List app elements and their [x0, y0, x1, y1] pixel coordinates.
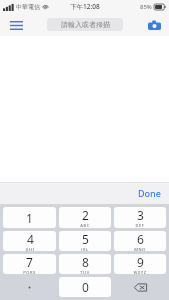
staticText: 請輸入或者掃描: [61, 20, 110, 29]
button[interactable]: 2: [59, 207, 111, 228]
button[interactable]: 8: [59, 254, 111, 274]
button[interactable]: Menu: [5, 14, 27, 36]
staticText: 3: [137, 207, 144, 223]
staticText: WXYZ: [133, 270, 147, 274]
staticText: Done: [138, 187, 161, 199]
button[interactable]: Scan with camera: [144, 15, 164, 35]
staticText: ABC: [80, 223, 90, 228]
staticText: 5: [82, 231, 89, 247]
button[interactable]: 7: [3, 254, 56, 274]
button[interactable]: 0: [59, 277, 111, 297]
button[interactable]: 5: [59, 231, 111, 251]
staticText: 4: [27, 231, 34, 247]
button[interactable]: Delete: [114, 277, 166, 297]
staticText: TUV: [80, 270, 90, 274]
staticText: MNO: [134, 247, 146, 251]
staticText: 0: [82, 279, 89, 295]
button[interactable]: 4: [3, 231, 56, 251]
button[interactable]: Decimal point: [3, 277, 56, 297]
button[interactable]: 6: [114, 231, 166, 251]
staticText: PQRS: [23, 270, 36, 274]
staticText: 7: [26, 254, 33, 270]
staticText: GHI: [25, 247, 35, 251]
button[interactable]: 9: [114, 254, 166, 274]
button[interactable]: Done: [134, 184, 165, 202]
staticText: 中華電信: [16, 3, 40, 11]
staticText: 2: [82, 207, 89, 223]
button[interactable]: 請輸入或者掃描: [47, 18, 123, 31]
button[interactable]: 1: [3, 207, 56, 228]
staticText: JKL: [81, 247, 89, 251]
staticText: 1: [26, 210, 33, 226]
staticText: 6: [137, 231, 144, 247]
staticText: 8: [82, 254, 89, 270]
staticText: DEF: [135, 223, 145, 228]
staticText: 下午12:08: [70, 2, 100, 11]
button[interactable]: 3: [114, 207, 166, 228]
staticText: 85%: [140, 3, 152, 11]
staticText: 9: [137, 254, 144, 270]
